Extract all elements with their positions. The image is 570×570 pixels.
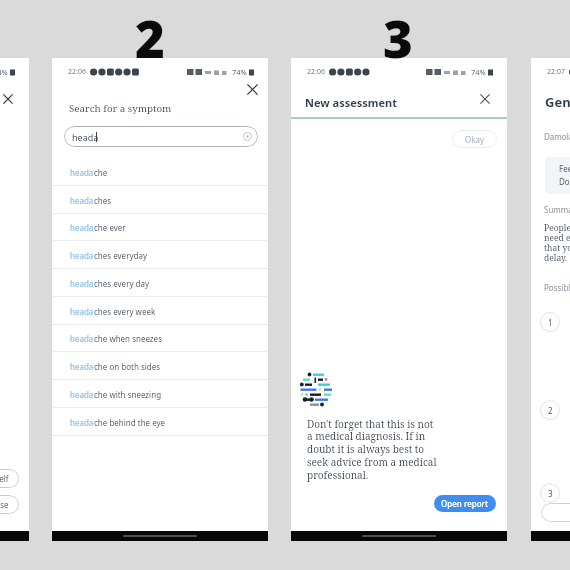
button[interactable]: 2 xyxy=(540,400,560,420)
staticText: Myself xyxy=(0,473,9,484)
button[interactable]: heada xyxy=(52,241,268,269)
staticText: Okay xyxy=(465,134,485,145)
staticText: heada xyxy=(70,195,94,206)
staticText: 22:07 xyxy=(547,67,565,77)
button[interactable]: heada xyxy=(52,408,268,436)
button[interactable]: 1 xyxy=(540,312,560,332)
button[interactable]: 3 xyxy=(540,483,560,503)
staticText: ches xyxy=(94,195,112,206)
staticText: heada xyxy=(70,389,94,400)
button[interactable]: Okay xyxy=(452,130,497,148)
staticText: Open report xyxy=(441,498,489,509)
button[interactable]: heada xyxy=(52,297,268,325)
staticText: Don't worry xyxy=(559,176,570,187)
staticText: ches everyday xyxy=(94,250,148,261)
button[interactable]: heada xyxy=(64,126,258,147)
staticText: Summary xyxy=(544,204,570,215)
button[interactable]: Close xyxy=(242,79,263,100)
staticText: General medicine xyxy=(545,93,570,111)
staticText: heada xyxy=(70,417,94,428)
staticText: heada xyxy=(70,333,94,344)
staticText: heada xyxy=(70,361,94,372)
staticText: 2 xyxy=(548,405,553,416)
staticText: 74% xyxy=(232,67,247,77)
staticText: che with sneezing xyxy=(94,389,162,400)
staticText: Don't forget that this is not a medical … xyxy=(307,417,439,482)
staticText: heada xyxy=(70,167,94,178)
button[interactable]: heada xyxy=(52,380,268,408)
staticText: heada xyxy=(70,250,94,261)
button[interactable]: heada xyxy=(52,158,268,186)
button[interactable]: Open report xyxy=(434,495,496,512)
button[interactable]: Close xyxy=(0,89,18,109)
button[interactable]: heada xyxy=(52,186,268,214)
staticText: heada xyxy=(70,278,94,289)
button[interactable]: Close xyxy=(475,89,495,109)
staticText: 74% xyxy=(0,67,8,77)
staticText: heada xyxy=(72,131,99,143)
staticText: Damola, 25 xyxy=(544,131,570,142)
staticText: 1 xyxy=(548,317,553,328)
button[interactable]: Someone else xyxy=(0,495,19,514)
staticText: che ever xyxy=(94,222,126,233)
staticText: che when sneezes xyxy=(94,333,162,344)
staticText: 22:06 xyxy=(68,67,86,77)
staticText: 74% xyxy=(471,67,486,77)
staticText: Search for a symptom xyxy=(69,102,172,115)
staticText: che xyxy=(94,167,108,178)
staticText: People with your symptoms may need emerg… xyxy=(544,222,570,264)
staticText: 22:06 xyxy=(307,67,325,77)
staticText: 2 xyxy=(135,3,165,72)
staticText: heada xyxy=(70,306,94,317)
staticText: ches every day xyxy=(94,278,150,289)
staticText: 3 xyxy=(383,3,413,72)
button[interactable]: heada xyxy=(52,213,268,241)
button[interactable]: heada xyxy=(52,269,268,297)
button[interactable]: Myself xyxy=(0,469,19,488)
button[interactable]: heada xyxy=(52,324,268,352)
staticText: Someone else xyxy=(0,499,9,510)
staticText: New assessment xyxy=(305,95,398,110)
staticText: Feeling unwell xyxy=(559,163,570,174)
staticText: 3 xyxy=(548,488,553,499)
staticText: che behind the eye xyxy=(94,417,166,428)
button[interactable]: heada xyxy=(52,352,268,380)
staticText: Possible causes xyxy=(544,282,570,293)
staticText: che on both sides xyxy=(94,361,161,372)
staticText: heada xyxy=(70,222,94,233)
button[interactable] xyxy=(541,503,570,522)
staticText: ches every week xyxy=(94,306,156,317)
